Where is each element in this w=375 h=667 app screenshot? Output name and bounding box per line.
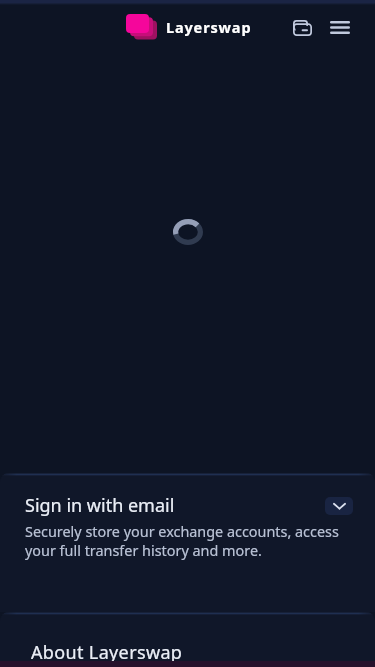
button[interactable]: Layerswap xyxy=(126,14,252,40)
button[interactable]: Expand xyxy=(325,497,353,515)
staticText: Securely store your exchange accounts, a… xyxy=(25,522,347,560)
staticText: Sign in with email xyxy=(25,493,175,518)
button[interactable]: Wallet xyxy=(282,8,322,47)
staticText: About Layerswap xyxy=(31,640,183,661)
button[interactable]: About Layerswap xyxy=(0,612,375,661)
button[interactable]: Sign in with email xyxy=(0,473,375,612)
staticText: Layerswap xyxy=(166,17,252,37)
button[interactable]: Menu xyxy=(320,8,360,47)
